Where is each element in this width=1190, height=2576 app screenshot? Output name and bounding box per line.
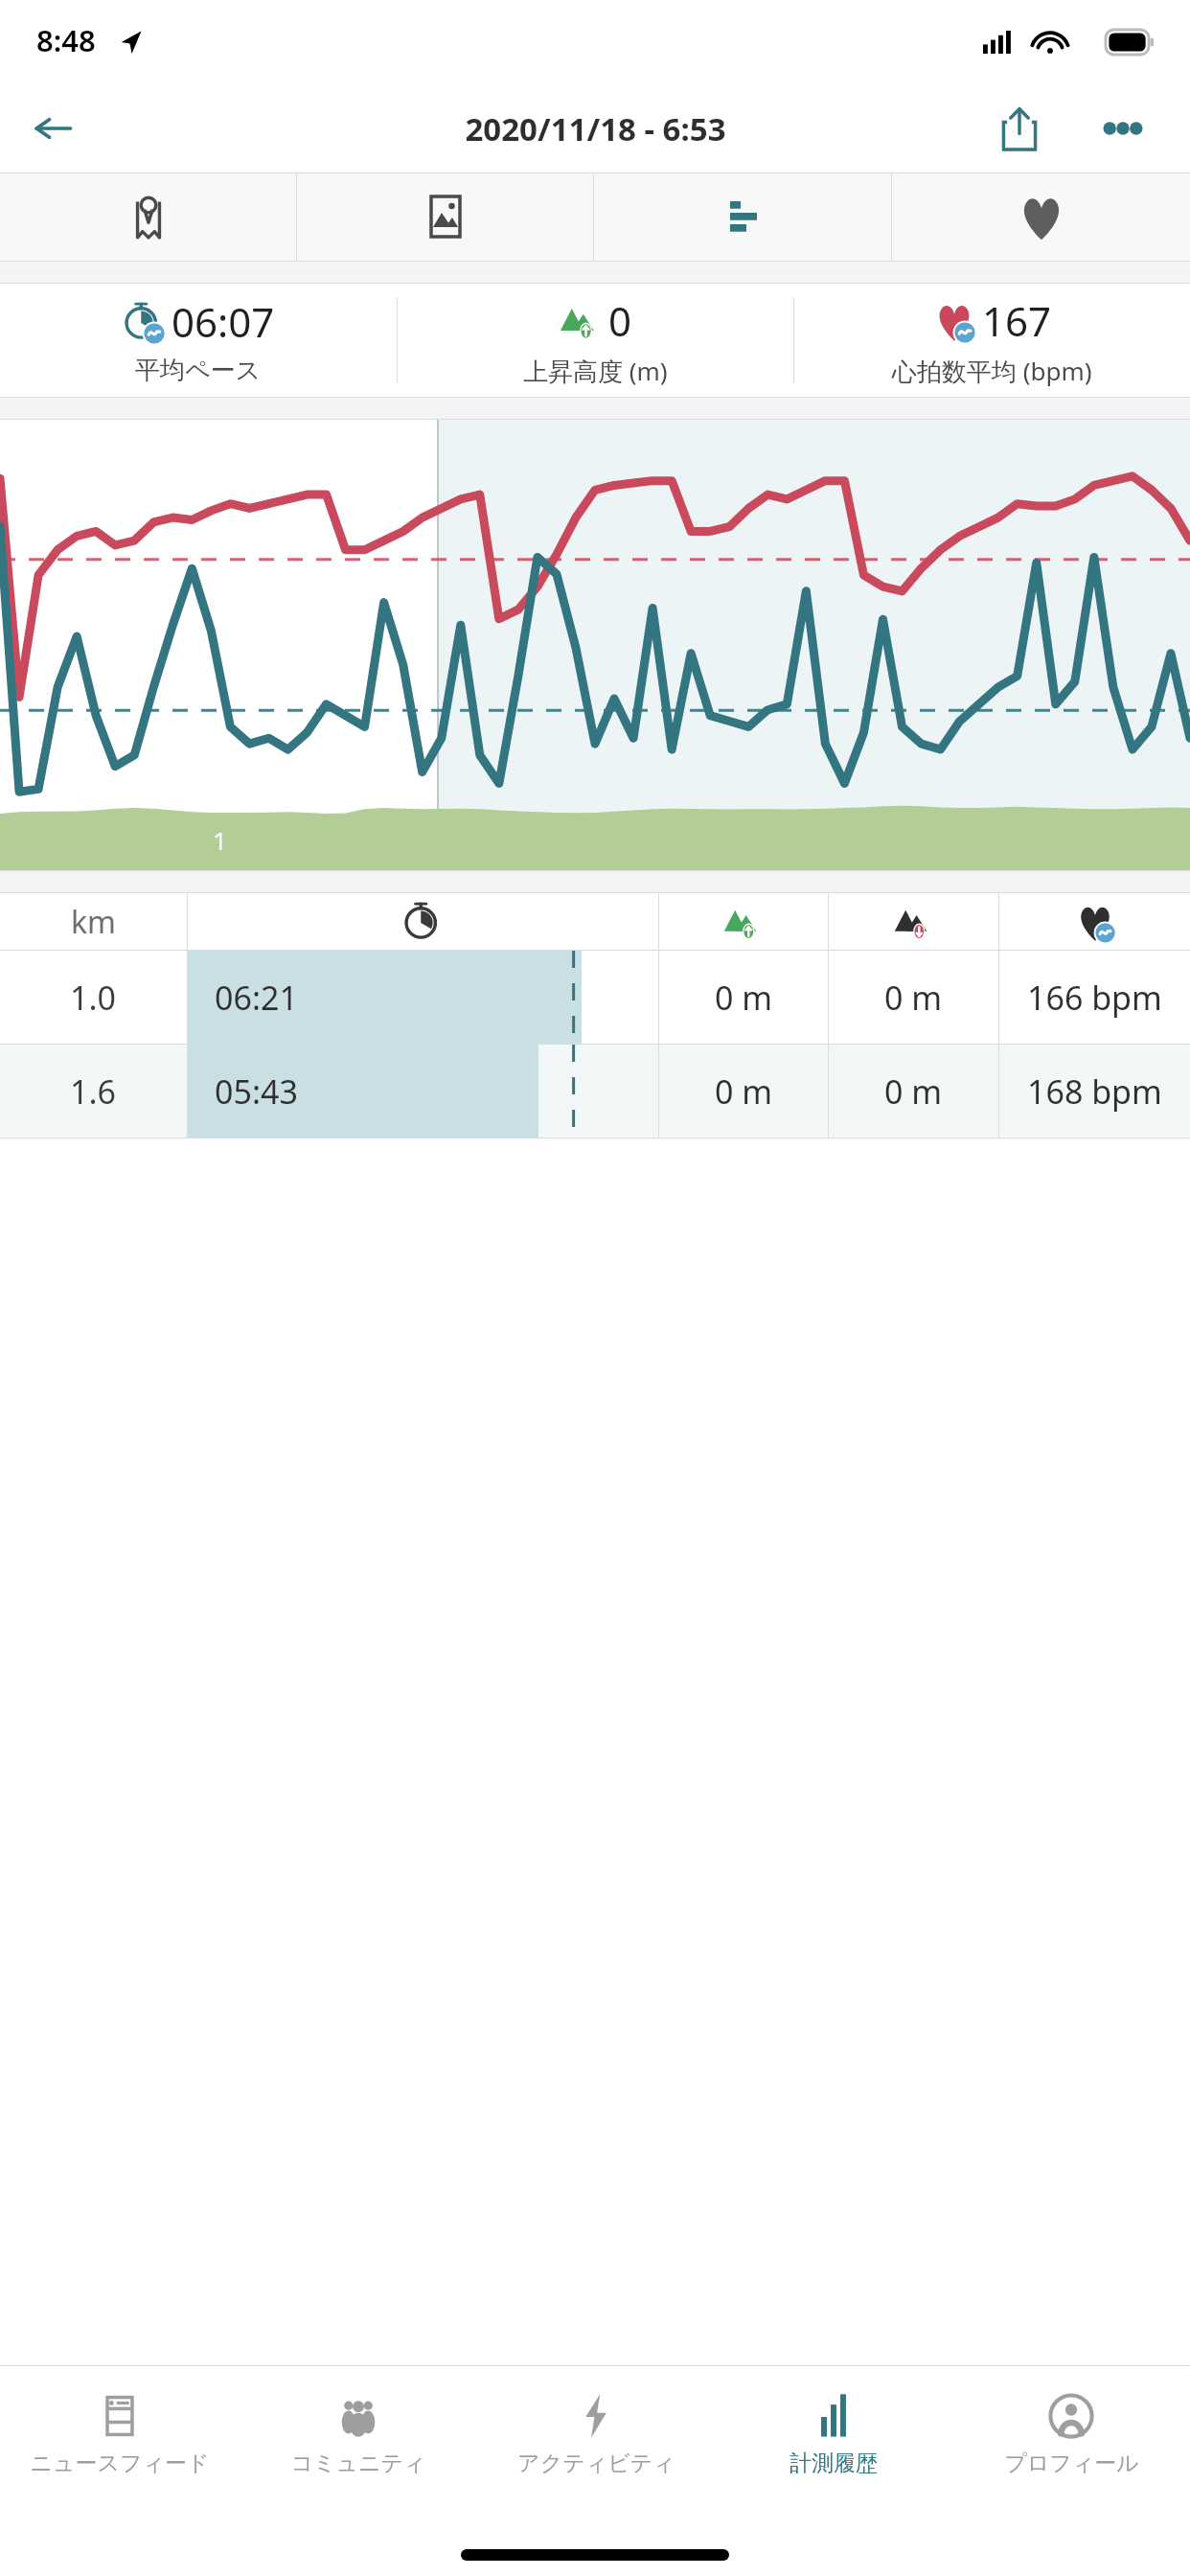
staticText: 0 m xyxy=(884,976,943,1020)
staticText: 8:48 xyxy=(36,20,96,60)
button[interactable]: プロフィール xyxy=(952,2365,1190,2511)
button[interactable]: 0 xyxy=(398,284,793,397)
button[interactable]: ニュースフィード xyxy=(0,2365,239,2511)
button[interactable]: More options xyxy=(1077,84,1169,172)
button[interactable]: Share xyxy=(973,84,1065,172)
button[interactable]: 計測履歴 xyxy=(715,2365,952,2511)
staticText: 06:21 xyxy=(215,976,298,1020)
staticText: 平均ペース xyxy=(135,355,262,386)
staticText: 0 m xyxy=(884,1069,943,1114)
button[interactable]: Photos xyxy=(297,172,594,261)
button[interactable]: 1.6 xyxy=(0,1045,1190,1138)
staticText: アクティビティ xyxy=(517,2449,675,2477)
button[interactable]: 1 xyxy=(0,420,1190,870)
staticText: 計測履歴 xyxy=(790,2449,878,2477)
staticText: 05:43 xyxy=(215,1069,298,1114)
staticText: ニュースフィード xyxy=(30,2449,210,2477)
staticText: プロフィール xyxy=(1004,2449,1139,2477)
button[interactable]: 06:07 xyxy=(0,284,397,397)
staticText: 心拍数平均 (bpm) xyxy=(892,354,1092,388)
staticText: 1.0 xyxy=(70,976,117,1020)
staticText: 167 xyxy=(982,293,1052,348)
button[interactable]: Back xyxy=(0,84,105,172)
staticText: 168 bpm xyxy=(1027,1069,1162,1114)
button[interactable]: Heart rate xyxy=(892,172,1190,261)
staticText: 0 m xyxy=(715,1069,773,1114)
staticText: 0 xyxy=(608,293,632,348)
button[interactable]: アクティビティ xyxy=(477,2365,715,2511)
staticText: コミュニティ xyxy=(290,2449,426,2477)
staticText: 1.6 xyxy=(70,1069,117,1114)
staticText: 0 m xyxy=(715,976,773,1020)
staticText: 1 xyxy=(213,823,227,857)
staticText: 上昇高度 (m) xyxy=(523,354,668,388)
staticText: 06:07 xyxy=(172,294,275,349)
button[interactable]: Charts xyxy=(594,172,892,261)
staticText: km xyxy=(71,901,117,943)
button[interactable]: コミュニティ xyxy=(239,2365,477,2511)
staticText: 166 bpm xyxy=(1027,976,1162,1020)
button[interactable]: 1.0 xyxy=(0,951,1190,1045)
button[interactable]: Map xyxy=(0,172,297,261)
staticText: 2020/11/18 - 6:53 xyxy=(465,107,726,150)
button[interactable]: 167 xyxy=(794,284,1190,397)
